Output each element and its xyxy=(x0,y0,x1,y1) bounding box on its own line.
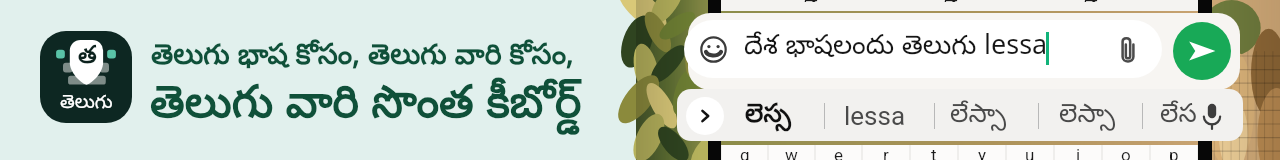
button[interactable]: Send message xyxy=(1173,22,1231,80)
button[interactable]: Attach file xyxy=(1112,34,1144,66)
staticText: తెలుగు భాష కోసం, తెలుగు వారి కోసం, xyxy=(151,39,574,78)
button[interactable]: lessa xyxy=(844,97,906,135)
staticText: త xyxy=(78,42,97,74)
button[interactable]: లేస xyxy=(1160,97,1197,135)
staticText: దేశ భాషలందు తెలుగు lessa xyxy=(744,31,1048,68)
staticText: ఉ xyxy=(804,0,818,2)
staticText: y xyxy=(978,145,987,160)
staticText: i xyxy=(1076,145,1081,160)
button[interactable]: Telugu Keyboard app icon xyxy=(40,31,132,123)
staticText: w xyxy=(785,145,798,160)
staticText: o xyxy=(1121,145,1131,160)
staticText: లేస్సా xyxy=(950,99,1007,134)
button[interactable]: Voice input xyxy=(1196,100,1228,132)
staticText: ఉ xyxy=(1084,0,1098,2)
staticText: p xyxy=(1169,145,1179,160)
staticText: లెస్సా xyxy=(1059,99,1116,134)
staticText: u xyxy=(1025,145,1035,160)
button[interactable]: Expand suggestions xyxy=(686,97,724,135)
staticText: r xyxy=(883,145,889,160)
staticText: ఉ xyxy=(944,0,958,2)
staticText: తెలుగు వారి సొంత కీబోర్డ్ xyxy=(150,78,582,138)
button[interactable]: లేస్సా xyxy=(950,97,1007,135)
staticText: లేస xyxy=(1160,99,1197,134)
staticText: q xyxy=(740,145,750,160)
staticText: e xyxy=(834,145,844,160)
button[interactable]: లెస్సా xyxy=(1059,97,1116,135)
staticText: తెలుగు xyxy=(60,91,113,117)
button[interactable]: దేశ భాషలందు తెలుగు lessa xyxy=(684,20,1162,78)
staticText: t xyxy=(931,145,937,160)
button[interactable]: లెస్స xyxy=(745,97,792,135)
staticText: lessa xyxy=(844,101,906,131)
staticText: లెస్స xyxy=(745,99,792,134)
